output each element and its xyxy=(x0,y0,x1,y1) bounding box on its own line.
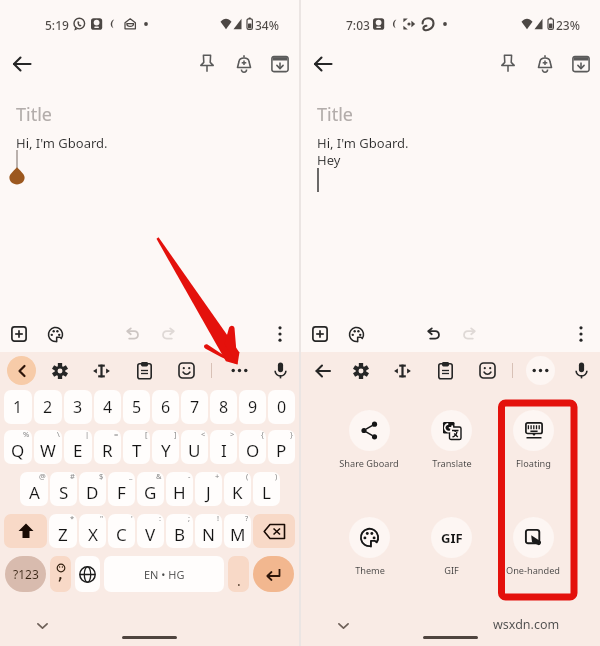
button[interactable]: Q xyxy=(4,430,32,464)
button[interactable]: Back xyxy=(308,356,337,385)
staticText: # xyxy=(70,472,75,481)
staticText: C xyxy=(116,523,127,546)
staticText: EN • HG xyxy=(144,567,185,582)
button[interactable]: Back xyxy=(7,356,36,385)
button[interactable]: Backspace xyxy=(253,514,295,548)
button[interactable]: Voice input xyxy=(266,356,295,385)
button[interactable]: Stickers xyxy=(172,356,201,385)
button[interactable]: Undo xyxy=(418,319,448,349)
staticText: Q xyxy=(11,439,25,462)
button[interactable]: H xyxy=(166,472,193,506)
button[interactable]: Text editing xyxy=(87,356,116,385)
button[interactable]: C xyxy=(108,514,135,548)
button[interactable]: Back xyxy=(6,48,38,80)
button[interactable]: Archive xyxy=(565,48,597,80)
button[interactable]: Archive xyxy=(264,48,296,80)
button[interactable]: 4 xyxy=(94,390,121,424)
button[interactable]: B xyxy=(166,514,193,548)
button[interactable]: 6 xyxy=(152,390,179,424)
button[interactable]: Reminder xyxy=(529,48,561,80)
staticText: 3 xyxy=(73,396,83,418)
button[interactable]: K xyxy=(224,472,251,506)
staticText: R xyxy=(102,439,113,462)
button[interactable]: More xyxy=(225,356,254,385)
button[interactable]: 2 xyxy=(34,390,62,424)
button[interactable]: Reminder xyxy=(228,48,260,80)
button[interactable]: Floating xyxy=(492,410,574,482)
button[interactable]: R xyxy=(94,430,121,464)
button[interactable]: Settings xyxy=(346,356,375,385)
button[interactable]: Redo xyxy=(454,319,484,349)
button[interactable]: Text editing xyxy=(388,356,417,385)
button[interactable]: Stickers xyxy=(473,356,502,385)
staticText: 23% xyxy=(556,17,580,33)
button[interactable]: More options xyxy=(566,319,596,349)
staticText: ! xyxy=(217,514,220,523)
button[interactable]: Change language xyxy=(75,556,100,592)
button[interactable]: A xyxy=(20,472,48,506)
button[interactable]: Add xyxy=(305,319,335,349)
button[interactable]: 1 xyxy=(4,390,32,424)
button[interactable]: V xyxy=(137,514,164,548)
button[interactable]: Hide keyboard xyxy=(30,614,54,638)
button[interactable]: Settings xyxy=(45,356,74,385)
button[interactable]: Z xyxy=(49,514,77,548)
button[interactable]: 7 xyxy=(181,390,208,424)
button[interactable]: Share Gboard xyxy=(328,410,410,482)
button[interactable]: EN • HG xyxy=(104,556,224,592)
button[interactable]: Emoji xyxy=(50,556,71,592)
button[interactable]: N xyxy=(195,514,222,548)
button[interactable]: Clipboard xyxy=(431,356,460,385)
staticText: \ xyxy=(57,430,60,439)
button[interactable]: S xyxy=(50,472,77,506)
button[interactable]: U xyxy=(181,430,208,464)
button[interactable]: GIF xyxy=(410,517,492,589)
button[interactable]: Enter xyxy=(253,556,294,592)
button[interactable]: Undo xyxy=(117,319,147,349)
button[interactable]: 8 xyxy=(210,390,237,424)
button[interactable]: ?123 xyxy=(5,556,46,592)
button[interactable]: Palette xyxy=(40,319,70,349)
button[interactable]: Back xyxy=(307,48,339,80)
button[interactable]: P xyxy=(268,430,295,464)
button[interactable]: Clipboard xyxy=(130,356,159,385)
button[interactable]: Voice input xyxy=(567,356,596,385)
button[interactable]: . xyxy=(228,556,249,592)
button[interactable]: Pin xyxy=(492,48,524,80)
staticText: Translate xyxy=(432,457,472,470)
button[interactable]: 3 xyxy=(64,390,92,424)
button[interactable]: T xyxy=(123,430,150,464)
button[interactable]: Palette xyxy=(341,319,371,349)
button[interactable]: 5 xyxy=(123,390,150,424)
button[interactable]: O xyxy=(239,430,266,464)
button[interactable]: Shift xyxy=(4,514,47,548)
button[interactable]: G xyxy=(137,472,164,506)
button[interactable]: Translate xyxy=(410,410,492,482)
button[interactable]: Hide keyboard xyxy=(331,614,355,638)
button[interactable]: 9 xyxy=(239,390,266,424)
button[interactable]: J xyxy=(195,472,222,506)
button[interactable]: W xyxy=(34,430,62,464)
staticText: M xyxy=(230,523,246,546)
button[interactable]: X xyxy=(79,514,106,548)
button[interactable]: I xyxy=(210,430,237,464)
button[interactable]: Add xyxy=(4,319,34,349)
staticText: Theme xyxy=(355,564,385,577)
button[interactable]: Theme xyxy=(328,517,410,589)
button[interactable]: Pin xyxy=(191,48,223,80)
staticText: ' xyxy=(131,514,133,523)
staticText: D xyxy=(86,481,99,504)
staticText: Hi, I'm Gboard. xyxy=(16,134,108,152)
button[interactable]: D xyxy=(79,472,106,506)
staticText: + xyxy=(215,472,220,481)
button[interactable]: More options xyxy=(265,319,295,349)
button[interactable]: Y xyxy=(152,430,179,464)
button[interactable]: One-handed xyxy=(492,517,574,589)
button[interactable]: L xyxy=(253,472,280,506)
button[interactable]: E xyxy=(64,430,92,464)
button[interactable]: More xyxy=(526,356,555,385)
button[interactable]: M xyxy=(224,514,251,548)
button[interactable]: 0 xyxy=(268,390,295,424)
button[interactable]: Redo xyxy=(153,319,183,349)
button[interactable]: F xyxy=(108,472,135,506)
